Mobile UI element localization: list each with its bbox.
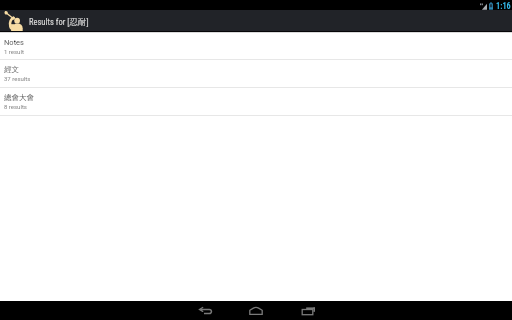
- button[interactable]: 經文: [0, 60, 512, 88]
- button[interactable]: Notes: [0, 33, 512, 60]
- staticText: 1:16: [496, 1, 511, 11]
- staticText: Results for [忍耐]: [29, 17, 89, 28]
- button[interactable]: Recent apps: [281, 301, 331, 320]
- staticText: 總會大會: [4, 93, 34, 102]
- button[interactable]: Home: [231, 301, 281, 320]
- button[interactable]: Back: [181, 301, 231, 320]
- staticText: 8 results: [4, 103, 27, 110]
- button[interactable]: 總會大會: [0, 88, 512, 116]
- button[interactable]: Gospel Library: [0, 10, 24, 31]
- staticText: 37 results: [4, 75, 31, 82]
- staticText: Notes: [4, 38, 24, 47]
- staticText: 經文: [4, 65, 19, 74]
- staticText: 1 result: [4, 48, 24, 55]
